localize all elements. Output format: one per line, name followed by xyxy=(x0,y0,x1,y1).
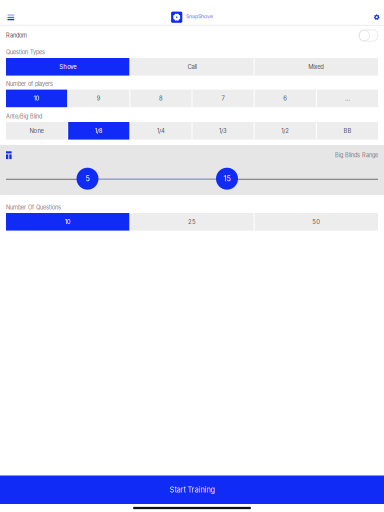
button[interactable]: 1/2 xyxy=(255,122,316,140)
staticText: 5 xyxy=(85,174,89,183)
staticText: 10 xyxy=(34,95,40,102)
staticText: 1/4 xyxy=(157,127,165,134)
button[interactable]: 25 xyxy=(130,213,254,231)
staticText: Shove xyxy=(59,63,76,70)
button[interactable]: 10 xyxy=(6,90,67,107)
staticText: Question Types xyxy=(6,49,45,56)
staticText: 1/3 xyxy=(219,127,227,134)
button[interactable]: Maximum big blinds xyxy=(216,168,238,190)
staticText: Random xyxy=(6,32,27,39)
button[interactable]: 6 xyxy=(255,90,316,107)
button[interactable]: Settings xyxy=(344,9,384,26)
button[interactable]: 10 xyxy=(6,213,129,231)
button[interactable]: None xyxy=(6,122,67,140)
button[interactable]: Start Training xyxy=(0,475,384,504)
staticText: 9 xyxy=(97,95,101,102)
button[interactable]: Mixed xyxy=(255,58,378,76)
staticText: SnapShove xyxy=(186,13,213,19)
button[interactable]: 1/8 xyxy=(68,122,129,140)
staticText: Number Of Questions xyxy=(6,204,61,211)
staticText: … xyxy=(345,95,350,102)
button[interactable]: 50 xyxy=(255,213,378,231)
staticText: 1/8 xyxy=(95,127,103,134)
staticText: Number of players xyxy=(6,81,53,87)
staticText: BB xyxy=(343,127,351,134)
staticText: 1/2 xyxy=(281,127,289,134)
staticText: 50 xyxy=(312,218,320,225)
button[interactable]: Call xyxy=(130,58,254,76)
staticText: 25 xyxy=(188,218,196,225)
staticText: Call xyxy=(187,63,196,70)
staticText: Start Training xyxy=(169,485,214,494)
button[interactable]: BB xyxy=(317,122,378,140)
button[interactable]: Minimum big blinds xyxy=(76,168,98,190)
button[interactable]: 9 xyxy=(68,90,129,107)
button[interactable]: 1/3 xyxy=(192,122,254,140)
button[interactable]: Shove xyxy=(6,58,129,76)
staticText: Mixed xyxy=(308,63,324,70)
button[interactable]: 7 xyxy=(192,90,254,107)
staticText: 15 xyxy=(223,174,230,183)
button[interactable]: 1/4 xyxy=(130,122,191,140)
button[interactable]: Menu xyxy=(0,9,40,26)
staticText: 10 xyxy=(65,218,71,225)
staticText: 7 xyxy=(222,95,225,102)
staticText: None xyxy=(30,127,44,134)
button[interactable]: Random xyxy=(359,30,378,41)
staticText: Ante/Big Blind xyxy=(6,113,42,120)
staticText: 8 xyxy=(159,95,163,102)
staticText: Big Blinds Range xyxy=(335,152,378,159)
staticText: 6 xyxy=(283,95,287,102)
button[interactable]: 8 xyxy=(130,90,191,107)
